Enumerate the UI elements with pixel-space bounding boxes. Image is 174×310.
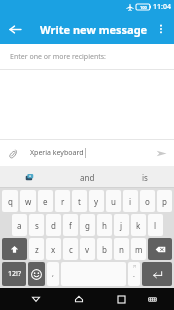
button[interactable]: Back xyxy=(22,288,49,310)
staticText: n xyxy=(119,244,124,255)
button[interactable]: and xyxy=(58,166,116,188)
button[interactable]: e xyxy=(38,190,53,212)
button[interactable]: s xyxy=(29,214,44,236)
button[interactable]: z xyxy=(29,238,44,260)
button[interactable]: Backspace xyxy=(148,238,172,260)
staticText: Write new message xyxy=(40,22,148,37)
staticText: c xyxy=(69,244,73,255)
button[interactable]: k xyxy=(131,214,146,236)
button[interactable]: n xyxy=(114,238,129,260)
button[interactable]: c xyxy=(63,238,78,260)
button[interactable]: y xyxy=(89,190,104,212)
staticText: l xyxy=(154,220,157,231)
button[interactable]: d xyxy=(46,214,61,236)
button[interactable]: x xyxy=(46,238,61,260)
staticText: u xyxy=(111,196,116,207)
button[interactable]: m xyxy=(131,238,146,260)
staticText: 100 xyxy=(140,5,147,10)
button[interactable]: u xyxy=(106,190,121,212)
button[interactable]: j xyxy=(114,214,129,236)
button[interactable]: w xyxy=(20,190,36,212)
button[interactable]: Enter xyxy=(142,262,172,286)
button[interactable]: is xyxy=(116,166,174,188)
button[interactable]: a xyxy=(12,214,27,236)
button[interactable]: More options xyxy=(148,14,174,44)
staticText: j xyxy=(120,220,123,231)
other: Shift xyxy=(2,238,27,260)
staticText: m xyxy=(135,244,143,255)
button[interactable]: t xyxy=(72,190,87,212)
button[interactable]: i xyxy=(123,190,138,212)
staticText: t xyxy=(78,196,81,207)
button[interactable]: f xyxy=(63,214,78,236)
button[interactable]: p xyxy=(157,190,172,212)
button[interactable]: ?! xyxy=(128,262,140,286)
button[interactable]: Recent apps xyxy=(108,288,135,310)
staticText: h xyxy=(102,220,107,231)
button[interactable]: Switch keyboard xyxy=(139,288,166,310)
other: Backspace xyxy=(148,238,172,260)
button[interactable]: Emoji xyxy=(28,262,45,286)
staticText: k xyxy=(136,220,141,231)
staticText: e xyxy=(43,196,48,207)
staticText: d xyxy=(51,220,56,231)
staticText: Enter one or more recipients: xyxy=(10,52,106,62)
button[interactable]: q xyxy=(2,190,18,212)
button[interactable]: o xyxy=(140,190,155,212)
staticText: 11:04 xyxy=(153,2,171,12)
button[interactable]: , xyxy=(47,262,59,286)
staticText: q xyxy=(8,196,13,207)
button[interactable]: v xyxy=(80,238,95,260)
staticText: Xperia keyboard xyxy=(30,148,84,158)
staticText: and xyxy=(80,172,95,183)
button[interactable]: l xyxy=(148,214,163,236)
staticText: a xyxy=(17,220,22,231)
button[interactable]: b xyxy=(97,238,112,260)
button[interactable]: Send xyxy=(148,140,174,166)
button[interactable]: 12!? xyxy=(2,262,26,286)
staticText: b xyxy=(102,244,107,255)
button[interactable]: h xyxy=(97,214,112,236)
button[interactable]: Home xyxy=(65,288,92,310)
button[interactable]: Sticker suggestion xyxy=(0,166,58,188)
staticText: ?! xyxy=(133,264,136,269)
staticText: i xyxy=(129,196,132,207)
staticText: x xyxy=(51,244,56,255)
staticText: 12!? xyxy=(8,269,21,279)
staticText: r xyxy=(61,196,65,207)
staticText: , xyxy=(52,269,54,279)
button[interactable]: Attach xyxy=(0,140,26,166)
button[interactable]: Enter one or more recipients: xyxy=(0,44,174,70)
staticText: o xyxy=(145,196,150,207)
other: Emoji xyxy=(28,262,45,286)
staticText: g xyxy=(85,220,90,231)
staticText: . xyxy=(133,270,135,280)
button[interactable]: r xyxy=(55,190,70,212)
staticText: y xyxy=(94,196,99,207)
staticText: f xyxy=(69,220,72,231)
staticText: w xyxy=(25,196,32,207)
button[interactable]: g xyxy=(80,214,95,236)
staticText: v xyxy=(85,244,90,255)
other: Enter xyxy=(142,262,172,286)
staticText: s xyxy=(35,220,39,231)
staticText: p xyxy=(162,196,167,207)
staticText: z xyxy=(35,244,39,255)
button[interactable]: Back xyxy=(0,14,30,44)
staticText: is xyxy=(142,172,148,183)
button[interactable]: Shift xyxy=(2,238,27,260)
